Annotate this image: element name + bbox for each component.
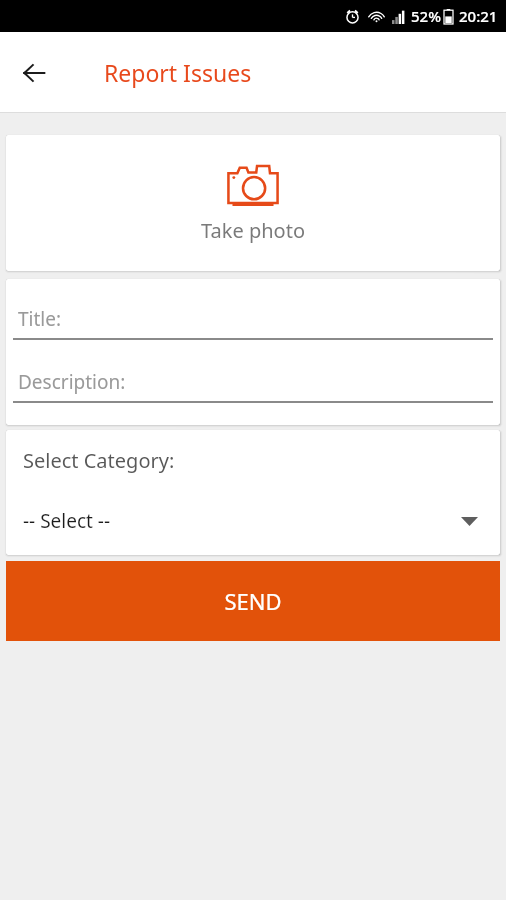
staticText: Title: bbox=[18, 306, 62, 332]
staticText: 52% bbox=[411, 6, 441, 26]
staticText: -- Select -- bbox=[23, 508, 111, 534]
button[interactable]: Description: bbox=[13, 369, 493, 403]
staticText: Report Issues bbox=[104, 57, 252, 88]
button[interactable]: Title: bbox=[13, 306, 493, 340]
button[interactable]: -- Select -- bbox=[6, 499, 500, 543]
staticText: Description: bbox=[18, 369, 126, 395]
staticText: Take photo bbox=[201, 217, 305, 244]
staticText: SEND bbox=[224, 586, 282, 616]
staticText: Select Category: bbox=[23, 447, 175, 474]
staticText: 20:21 bbox=[459, 6, 498, 26]
button[interactable]: Take photo bbox=[6, 135, 500, 271]
button[interactable]: SEND bbox=[6, 561, 500, 641]
button[interactable]: Back bbox=[10, 49, 58, 97]
